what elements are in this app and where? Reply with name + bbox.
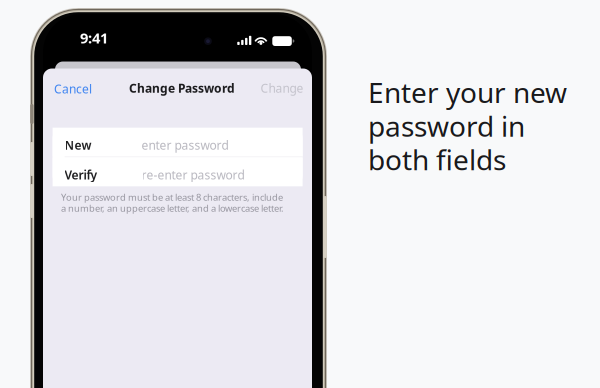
staticText: 9:41 (80, 28, 108, 47)
staticText: Change Password (129, 80, 235, 96)
staticText: Verify (65, 167, 98, 183)
staticText: both fields (368, 141, 506, 178)
staticText: New (65, 137, 92, 153)
staticText: Change (260, 80, 303, 96)
button[interactable]: Verify (53, 157, 303, 186)
staticText: re-enter password (142, 167, 245, 183)
staticText: Enter your new (368, 73, 567, 111)
button[interactable]: Change (257, 81, 299, 95)
staticText: enter password (142, 137, 229, 153)
staticText: Your password must be at least 8 charact… (61, 191, 283, 203)
button[interactable]: New (53, 128, 303, 157)
staticText: Cancel (54, 81, 92, 97)
staticText: a number, an uppercase letter, and a low… (61, 202, 284, 214)
staticText: password in (368, 107, 525, 144)
button[interactable]: Cancel (54, 81, 92, 97)
